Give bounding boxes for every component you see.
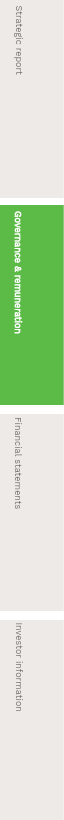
button[interactable]: Financial statements	[0, 414, 64, 611]
button[interactable]: Governance & remuneration	[0, 205, 64, 405]
button[interactable]: Strategic report	[0, 0, 64, 198]
staticText: Strategic report	[12, 5, 23, 75]
staticText: Investor information	[12, 622, 23, 712]
button[interactable]: Investor information	[0, 620, 64, 820]
staticText: Governance & remuneration	[12, 211, 23, 334]
staticText: Financial statements	[12, 417, 23, 510]
